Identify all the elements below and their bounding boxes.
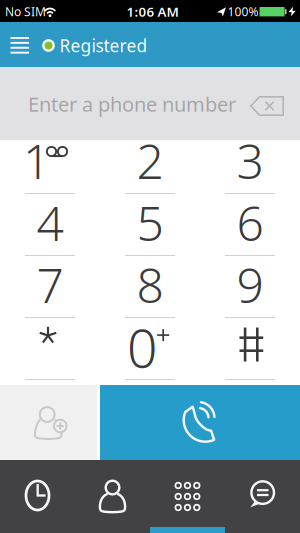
staticText: No SIM	[5, 3, 46, 19]
staticText: Registered	[59, 34, 147, 57]
button[interactable]: Contacts	[75, 460, 150, 533]
button[interactable]: Pound	[200, 316, 300, 379]
staticText: 6	[236, 191, 263, 254]
button[interactable]: Messages	[225, 460, 300, 533]
button[interactable]: 4	[0, 192, 100, 255]
staticText: 5	[136, 191, 163, 254]
staticText: 1:06 AM	[126, 3, 178, 20]
button[interactable]: Add contact	[0, 385, 97, 460]
button[interactable]: 8	[100, 254, 200, 317]
staticText: 3	[236, 129, 263, 192]
button[interactable]: 1	[0, 130, 100, 193]
button[interactable]: Star	[0, 316, 100, 379]
button[interactable]: Recents	[0, 460, 75, 533]
staticText: 100%	[227, 3, 258, 19]
button[interactable]: Delete	[245, 89, 289, 123]
staticText: 9	[236, 253, 263, 316]
button[interactable]: Menu	[3, 28, 37, 62]
button[interactable]: Keypad	[150, 460, 225, 533]
staticText: Enter a phone number	[28, 91, 236, 117]
staticText: 0	[127, 312, 157, 382]
button[interactable]: Call	[100, 385, 300, 460]
button[interactable]: 0	[100, 316, 200, 379]
button[interactable]: 9	[200, 254, 300, 317]
staticText: 1	[23, 129, 50, 192]
staticText: 4	[36, 191, 63, 254]
button[interactable]: 6	[200, 192, 300, 255]
button[interactable]: 2	[100, 130, 200, 193]
staticText: 8	[136, 253, 163, 316]
button[interactable]: 3	[200, 130, 300, 193]
button[interactable]: 5	[100, 192, 200, 255]
staticText: 2	[136, 129, 163, 192]
button[interactable]: 7	[0, 254, 100, 317]
staticText: 7	[36, 253, 63, 316]
